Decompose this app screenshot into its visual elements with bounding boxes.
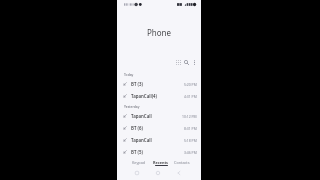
staticText: TapanCall: [131, 113, 152, 119]
staticText: 5:20 PM: [184, 82, 197, 87]
button[interactable]: TapanCall(4): [117, 90, 201, 102]
button[interactable]: Keypad: [174, 56, 182, 69]
button[interactable]: TapanCall: [117, 110, 201, 122]
staticText: TapanCall(4): [131, 93, 158, 99]
button[interactable]: Home: [153, 168, 162, 177]
button[interactable]: More options: [190, 56, 198, 69]
button[interactable]: Keypad: [128, 158, 150, 170]
staticText: Phone: [147, 27, 172, 38]
button[interactable]: Back: [174, 168, 183, 177]
staticText: 8:31 PM: [184, 126, 197, 131]
staticText: 4:31 PM: [184, 94, 197, 99]
button[interactable]: Recents: [150, 158, 171, 170]
staticText: Recents: [153, 160, 169, 165]
button[interactable]: Recent apps: [132, 168, 141, 177]
button[interactable]: TapanCall: [117, 134, 201, 146]
staticText: Keypad: [132, 160, 146, 165]
staticText: 5:18 PM: [184, 138, 197, 143]
button[interactable]: Search: [182, 56, 190, 69]
button[interactable]: BT (5): [117, 146, 201, 158]
staticText: 3:46 PM: [184, 150, 197, 155]
staticText: Contacts: [174, 160, 190, 165]
staticText: BT (6): [131, 125, 143, 131]
button[interactable]: BT (3): [117, 78, 201, 90]
staticText: TapanCall: [131, 137, 152, 143]
staticText: BT (5): [131, 149, 143, 155]
button[interactable]: BT (6): [117, 122, 201, 134]
button[interactable]: Contacts: [171, 158, 192, 170]
staticText: Today: [124, 72, 134, 76]
staticText: BT (3): [131, 81, 143, 87]
staticText: 10:12 PM: [182, 114, 197, 119]
staticText: Yesterday: [124, 104, 140, 108]
